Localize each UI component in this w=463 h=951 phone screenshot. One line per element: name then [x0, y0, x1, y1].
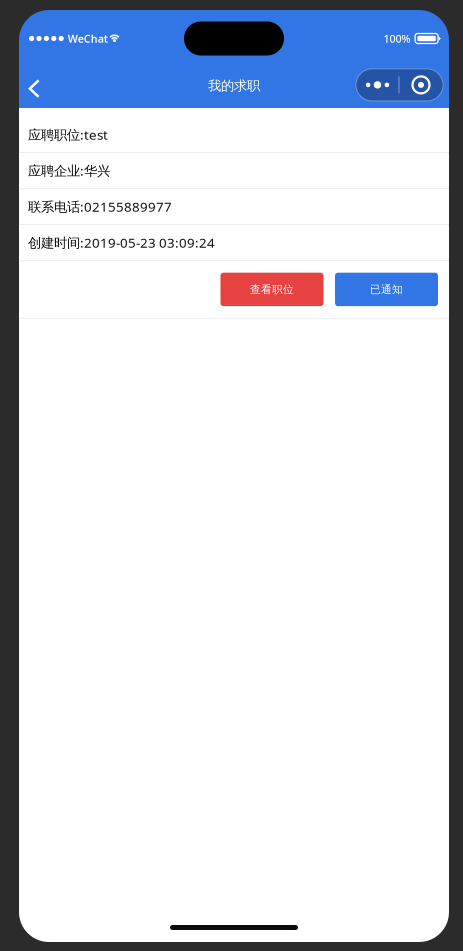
button[interactable]: More options [356, 71, 449, 103]
staticText: 联系电话:02155889977 [28, 198, 172, 215]
staticText: WeChat [68, 31, 108, 46]
staticText: 应聘职位:test [28, 126, 108, 143]
button[interactable]: Back [19, 67, 55, 106]
staticText: 查看职位 [250, 283, 294, 296]
staticText: 创建时间:2019-05-23 03:09:24 [28, 234, 215, 251]
staticText: 应聘企业:华兴 [28, 162, 110, 179]
staticText: 我的求职 [208, 78, 260, 94]
staticText: 已通知 [370, 283, 403, 296]
staticText: 100% [383, 31, 410, 46]
button[interactable]: 查看职位 [220, 273, 323, 306]
button[interactable]: 已通知 [335, 273, 438, 306]
